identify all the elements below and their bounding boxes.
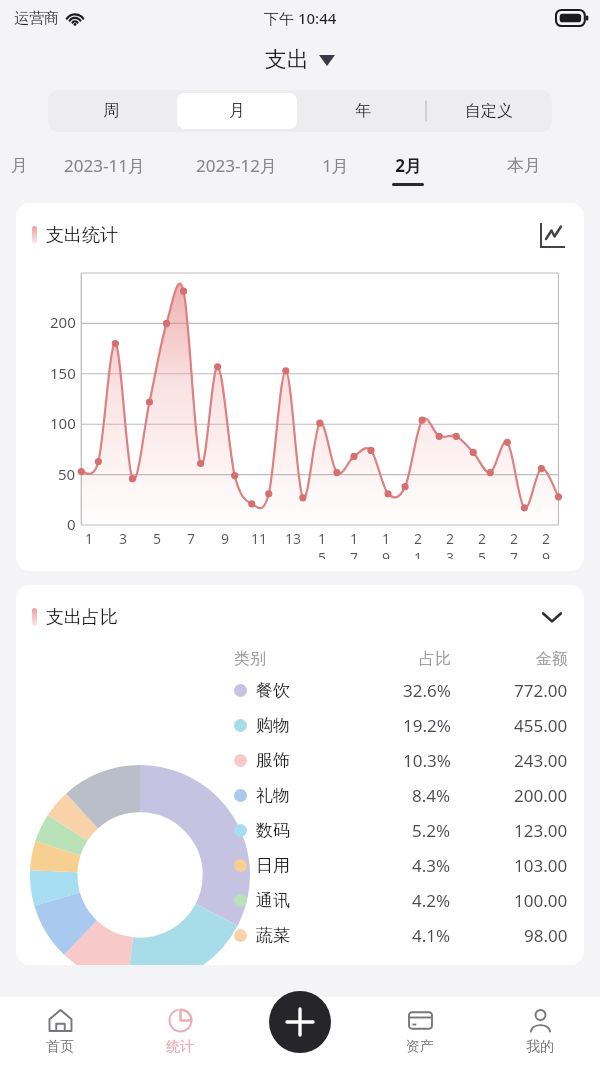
staticText: 10.3% — [403, 749, 451, 772]
staticText: 5.2% — [412, 819, 451, 842]
staticText: 9 — [221, 529, 230, 548]
staticText: 我的 — [526, 1038, 554, 1056]
staticText: 1 — [85, 529, 94, 548]
staticText: 支出 — [265, 46, 309, 74]
button[interactable]: 1月 — [301, 148, 369, 192]
button[interactable]: 2023-11月 — [38, 148, 171, 192]
staticText: 23 — [446, 529, 462, 559]
staticText: 金额 — [536, 649, 568, 669]
staticText: 15 — [318, 529, 334, 559]
button[interactable]: 周 — [51, 93, 171, 129]
staticText: 21 — [414, 529, 430, 559]
button[interactable]: 自定义 — [429, 93, 549, 129]
staticText: 购物 — [256, 715, 290, 736]
button[interactable]: 切换图表类型 — [536, 219, 568, 251]
button[interactable]: 支出 — [257, 42, 343, 78]
button[interactable]: 本月 — [447, 148, 600, 192]
staticText: 通讯 — [256, 890, 290, 911]
button[interactable]: 2月 — [369, 148, 447, 192]
staticText: 98.00 — [524, 924, 568, 947]
staticText: 25 — [478, 529, 494, 559]
staticText: 123.00 — [514, 819, 568, 842]
staticText: 19 — [382, 529, 398, 559]
button[interactable]: 2023-12月 — [171, 148, 301, 192]
staticText: 103.00 — [514, 854, 568, 877]
button[interactable]: 添加记账 — [269, 991, 331, 1053]
button[interactable]: 月 — [0, 148, 38, 192]
staticText: 餐饮 — [256, 680, 290, 701]
staticText: 支出统计 — [46, 224, 118, 247]
button[interactable]: 首页 — [0, 997, 120, 1067]
button[interactable]: 年 — [303, 93, 423, 129]
staticText: 29 — [542, 529, 558, 559]
staticText: 4.1% — [412, 924, 451, 947]
staticText: 200 — [50, 312, 76, 332]
staticText: 服饰 — [256, 750, 290, 771]
staticText: 100.00 — [514, 889, 568, 912]
staticText: 772.00 — [514, 679, 568, 702]
staticText: 支出占比 — [46, 606, 118, 629]
button[interactable]: 统计 — [120, 997, 240, 1067]
staticText: 下午 10:44 — [264, 8, 337, 28]
button[interactable]: 月 — [177, 93, 297, 129]
staticText: 150 — [50, 363, 76, 383]
button[interactable]: 日用 — [234, 848, 568, 883]
staticText: 17 — [350, 529, 366, 559]
staticText: 数码 — [256, 820, 290, 841]
staticText: 0 — [67, 514, 76, 534]
staticText: 2023-11月 — [64, 154, 145, 177]
button[interactable]: 餐饮 — [234, 673, 568, 708]
staticText: 13 — [285, 529, 302, 548]
staticText: 自定义 — [465, 101, 513, 121]
staticText: 年 — [355, 101, 371, 121]
button[interactable]: 数码 — [234, 813, 568, 848]
staticText: 礼物 — [256, 785, 290, 806]
staticText: 4.2% — [412, 889, 451, 912]
staticText: 32.6% — [403, 679, 451, 702]
staticText: 7 — [187, 529, 196, 548]
button[interactable]: 资产 — [360, 997, 480, 1067]
staticText: 243.00 — [514, 749, 568, 772]
button[interactable]: 购物 — [234, 708, 568, 743]
button[interactable]: 展开 — [536, 601, 568, 633]
button[interactable]: 我的 — [480, 997, 600, 1067]
staticText: 100 — [50, 413, 76, 433]
staticText: 月 — [11, 155, 28, 176]
staticText: 资产 — [406, 1038, 434, 1056]
staticText: 3 — [119, 529, 128, 548]
staticText: 4.3% — [412, 854, 451, 877]
button[interactable]: 服饰 — [234, 743, 568, 778]
staticText: 运营商 — [14, 9, 59, 28]
staticText: 首页 — [46, 1038, 74, 1056]
button[interactable]: 礼物 — [234, 778, 568, 813]
staticText: 1月 — [322, 154, 349, 177]
staticText: 蔬菜 — [256, 925, 290, 946]
staticText: 2023-12月 — [196, 154, 277, 177]
staticText: 日用 — [256, 855, 290, 876]
button[interactable]: 通讯 — [234, 883, 568, 918]
staticText: 统计 — [166, 1038, 194, 1056]
staticText: 月 — [229, 101, 245, 121]
staticText: 11 — [251, 529, 268, 548]
staticText: 27 — [510, 529, 526, 559]
staticText: 占比 — [419, 649, 451, 669]
staticText: 200.00 — [514, 784, 568, 807]
staticText: 周 — [103, 101, 119, 121]
button[interactable]: 蔬菜 — [234, 918, 568, 953]
staticText: 5 — [153, 529, 162, 548]
staticText: 本月 — [507, 155, 541, 176]
staticText: 2月 — [395, 154, 422, 177]
staticText: 类别 — [234, 649, 266, 669]
staticText: 8.4% — [412, 784, 451, 807]
staticText: 19.2% — [403, 714, 451, 737]
staticText: 50 — [58, 464, 76, 484]
staticText: 455.00 — [514, 714, 568, 737]
